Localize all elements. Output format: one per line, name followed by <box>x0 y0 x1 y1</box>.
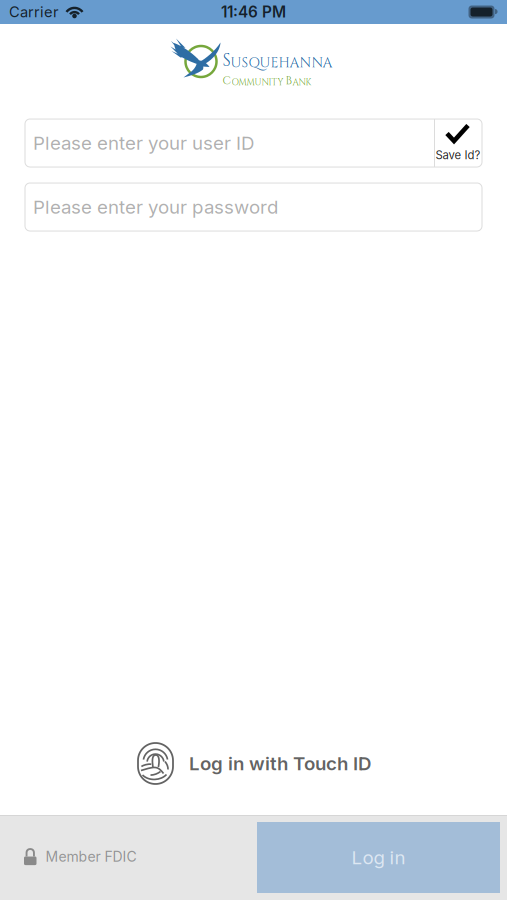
staticText: Please enter your user ID <box>33 132 254 154</box>
staticText: Carrier <box>9 3 59 21</box>
staticText: ANK <box>292 76 311 88</box>
staticText: Please enter your password <box>33 196 278 218</box>
staticText: Save Id? <box>435 148 480 162</box>
button[interactable]: Save Id <box>434 119 482 167</box>
button[interactable]: Log in with Touch ID <box>136 743 371 784</box>
staticText: 11:46 PM <box>221 3 286 21</box>
staticText: S <box>222 49 230 72</box>
staticText: B <box>285 73 292 88</box>
button[interactable]: Log in <box>257 822 500 893</box>
staticText: Log in <box>351 846 405 869</box>
staticText: Log in with Touch ID <box>189 752 371 775</box>
staticText: C <box>222 73 231 88</box>
staticText: OMMUNITY <box>231 76 283 88</box>
staticText: USQUEHANNA <box>230 54 332 72</box>
staticText: Member FDIC <box>45 848 136 865</box>
